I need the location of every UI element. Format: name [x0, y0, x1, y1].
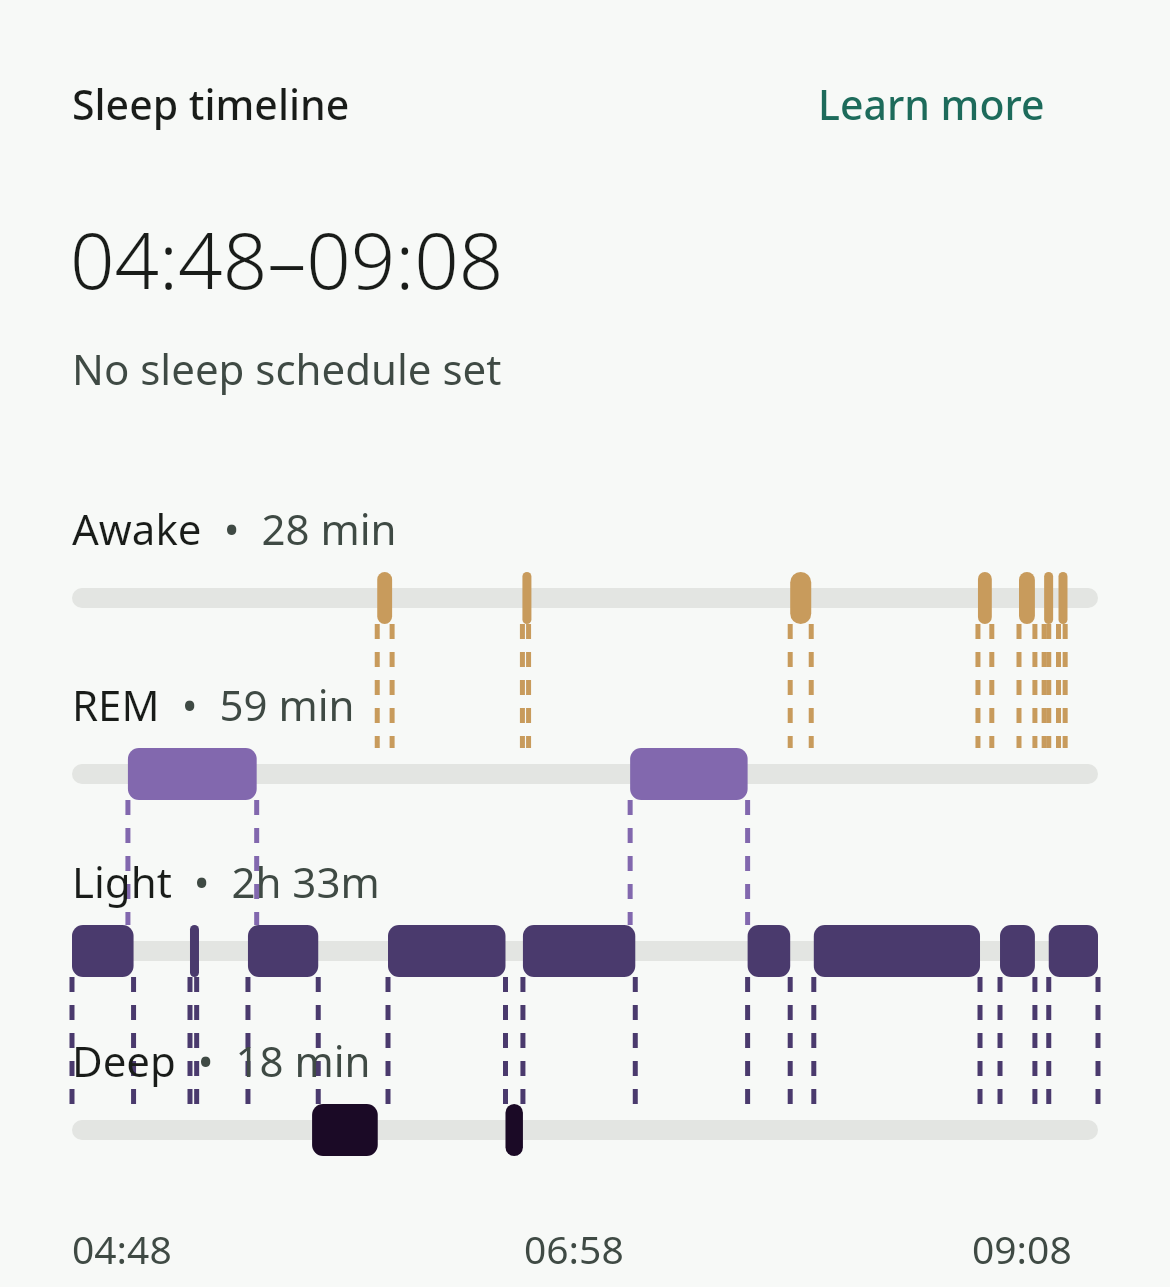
staticText: No sleep schedule set [72, 340, 502, 397]
button[interactable]: REM [72, 676, 355, 733]
staticText: REM [72, 676, 160, 733]
staticText: Deep [72, 1032, 176, 1089]
staticText: Sleep timeline [72, 76, 350, 132]
button[interactable]: Deep [72, 1032, 371, 1089]
button[interactable]: Learn more [818, 76, 1045, 132]
staticText: 09:08 [972, 1222, 1072, 1275]
staticText: Light [72, 853, 172, 910]
staticText: 04:48 [72, 1222, 172, 1275]
button[interactable]: Light [72, 853, 380, 910]
staticText: 04:48–09:08 [70, 206, 504, 312]
staticText: • 2h 33m [172, 853, 380, 910]
staticText: 06:58 [524, 1222, 624, 1275]
staticText: Learn more [818, 76, 1045, 132]
button[interactable]: Awake [72, 500, 397, 557]
staticText: Awake [72, 500, 202, 557]
staticText: • 28 min [202, 500, 397, 557]
staticText: • 59 min [160, 676, 355, 733]
staticText: • 18 min [176, 1032, 371, 1089]
